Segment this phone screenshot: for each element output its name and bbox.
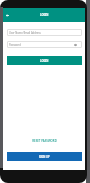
staticText: LOGIN bbox=[40, 59, 49, 63]
staticText: User Name/Email Address bbox=[9, 31, 41, 35]
button[interactable]: SIGN UP bbox=[7, 152, 82, 161]
button[interactable]: User Name/Email Address bbox=[7, 29, 82, 36]
staticText: Password bbox=[9, 43, 21, 47]
staticText: LOGIN bbox=[40, 13, 49, 17]
button[interactable]: Back bbox=[6, 11, 14, 20]
staticText: RESET PASSWORD bbox=[32, 139, 57, 143]
button[interactable]: RESET PASSWORD bbox=[7, 138, 82, 144]
staticText: SIGN UP bbox=[39, 155, 50, 159]
button[interactable]: Show password bbox=[73, 42, 78, 47]
button[interactable]: Password bbox=[7, 41, 82, 48]
button[interactable]: LOGIN bbox=[7, 56, 82, 65]
